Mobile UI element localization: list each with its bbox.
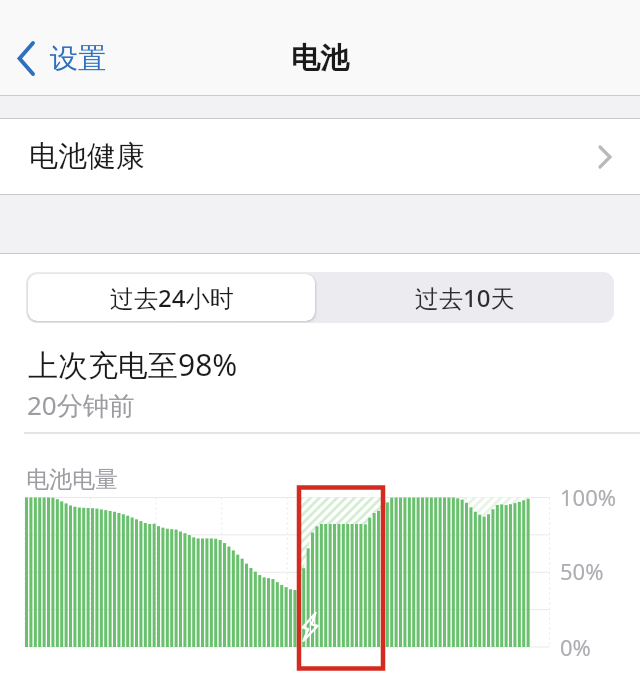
- button[interactable]: 过去24小时: [28, 274, 315, 321]
- button[interactable]: 返回: [8, 30, 112, 86]
- staticText: 电池健康: [29, 138, 145, 175]
- staticText: 50%: [560, 556, 604, 586]
- staticText: 0%: [560, 632, 591, 662]
- staticText: 过去24小时: [110, 281, 234, 314]
- staticText: 100%: [560, 482, 617, 512]
- staticText: 电池电量: [26, 465, 118, 494]
- other: 返回: [14, 30, 50, 86]
- button[interactable]: 电池健康: [0, 119, 640, 194]
- staticText: 设置: [50, 41, 106, 76]
- button[interactable]: 过去10天: [317, 274, 612, 321]
- staticText: 过去10天: [415, 281, 515, 314]
- staticText: 20分钟前: [27, 387, 135, 423]
- staticText: 电池: [291, 40, 349, 77]
- staticText: 上次充电至98%: [28, 344, 238, 385]
